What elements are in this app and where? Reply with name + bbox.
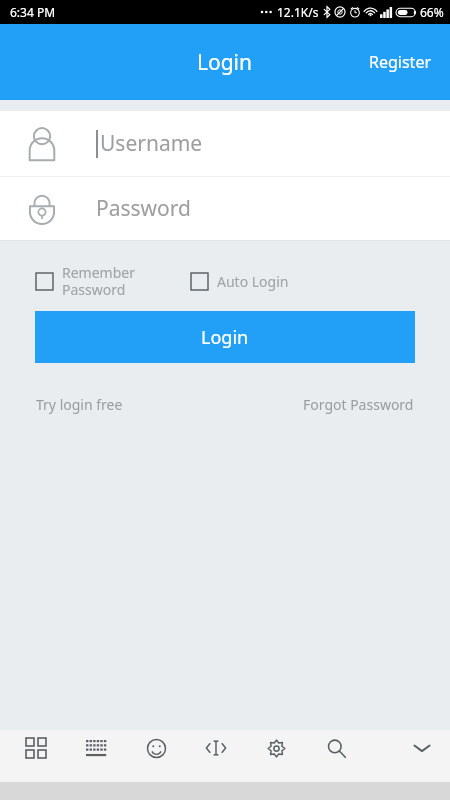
staticText: Password: [96, 194, 191, 223]
staticText: Forgot Password: [303, 395, 414, 414]
staticText: Register: [369, 51, 432, 73]
button[interactable]: Keyboard: [78, 730, 114, 766]
button[interactable]: Password: [0, 177, 450, 240]
button[interactable]: Search: [318, 730, 354, 766]
button[interactable]: Login: [35, 311, 415, 363]
staticText: 6:34 PM: [10, 4, 56, 20]
staticText: Auto Login: [217, 272, 289, 291]
staticText: Login: [197, 48, 253, 77]
button[interactable]: Try login free: [36, 391, 123, 418]
button[interactable]: Collapse: [404, 730, 440, 766]
button[interactable]: Cursor: [198, 730, 234, 766]
button[interactable]: Emoji: [138, 730, 174, 766]
staticText: Remember Password: [62, 263, 135, 299]
staticText: Username: [100, 129, 203, 158]
button[interactable]: Settings: [258, 730, 294, 766]
button[interactable]: Auto Login: [191, 272, 289, 291]
staticText: Try login free: [36, 395, 123, 414]
button[interactable]: Forgot Password: [303, 391, 414, 418]
button[interactable]: Remember Password: [36, 263, 135, 299]
button[interactable]: Register: [351, 39, 450, 85]
staticText: Login: [201, 325, 249, 350]
staticText: 66%: [420, 4, 444, 20]
button[interactable]: Username: [0, 111, 450, 176]
button[interactable]: Apps: [18, 730, 54, 766]
staticText: 12.1K/s: [277, 4, 319, 20]
